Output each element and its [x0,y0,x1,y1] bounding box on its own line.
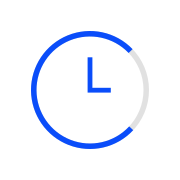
button[interactable]: Timer [0,0,180,180]
